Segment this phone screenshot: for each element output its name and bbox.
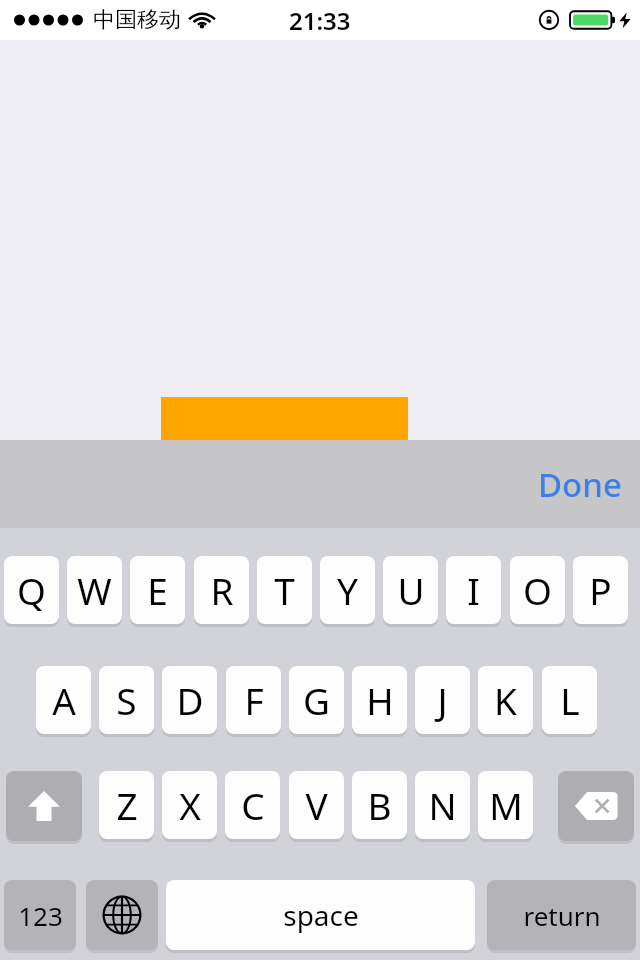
button[interactable]: W (67, 556, 122, 624)
staticText: E (147, 565, 168, 615)
staticText: R (210, 565, 234, 615)
button[interactable]: Q (4, 556, 59, 624)
staticText: P (589, 565, 612, 615)
staticText: L (560, 675, 580, 725)
button[interactable]: Backspace (558, 771, 634, 841)
staticText: N (428, 780, 457, 830)
staticText: I (467, 565, 480, 615)
staticText: F (244, 675, 264, 725)
staticText: V (305, 780, 328, 830)
staticText: D (176, 675, 204, 725)
button[interactable]: K (478, 666, 533, 734)
staticText: 中国移动 (93, 6, 181, 34)
button[interactable]: T (257, 556, 312, 624)
button[interactable]: L (542, 666, 597, 734)
button[interactable]: M (478, 771, 533, 839)
button[interactable]: I (446, 556, 501, 624)
button[interactable]: C (225, 771, 280, 839)
button[interactable]: space (166, 880, 475, 950)
button[interactable]: N (415, 771, 470, 839)
staticText: J (437, 675, 448, 725)
staticText: U (397, 565, 425, 615)
button[interactable]: return (487, 880, 636, 950)
button[interactable]: Z (99, 771, 154, 839)
button[interactable]: R (194, 556, 249, 624)
button[interactable]: B (352, 771, 407, 839)
staticText: H (366, 675, 394, 725)
button[interactable]: J (415, 666, 470, 734)
button[interactable]: X (162, 771, 217, 839)
button[interactable]: E (130, 556, 185, 624)
staticText: W (77, 565, 112, 615)
button[interactable]: P (573, 556, 628, 624)
staticText: M (489, 780, 523, 830)
button[interactable]: Shift (6, 771, 82, 841)
staticText: Z (116, 780, 138, 830)
button[interactable]: Y (320, 556, 375, 624)
staticText: Y (337, 565, 358, 615)
staticText: Q (17, 565, 46, 615)
button[interactable]: 123 (4, 880, 76, 950)
button[interactable]: Done (520, 452, 640, 517)
button[interactable]: H (352, 666, 407, 734)
staticText: A (52, 675, 76, 725)
staticText: return (523, 898, 601, 933)
staticText: space (283, 896, 359, 934)
staticText: B (367, 780, 392, 830)
button[interactable]: A (36, 666, 91, 734)
staticText: X (179, 780, 201, 830)
staticText: Done (538, 462, 622, 507)
staticText: 21:33 (289, 4, 351, 37)
button[interactable]: F (226, 666, 281, 734)
button[interactable]: Switch keyboard (86, 880, 158, 950)
button[interactable]: O (510, 556, 565, 624)
staticText: S (116, 675, 137, 725)
button[interactable]: V (289, 771, 344, 839)
staticText: C (241, 780, 265, 830)
staticText: G (303, 675, 330, 725)
staticText: K (494, 675, 517, 725)
staticText: 123 (18, 898, 63, 933)
button[interactable]: U (383, 556, 438, 624)
staticText: T (274, 565, 295, 615)
button[interactable]: D (162, 666, 217, 734)
button[interactable]: S (99, 666, 154, 734)
staticText: O (523, 565, 552, 615)
button[interactable]: G (289, 666, 344, 734)
